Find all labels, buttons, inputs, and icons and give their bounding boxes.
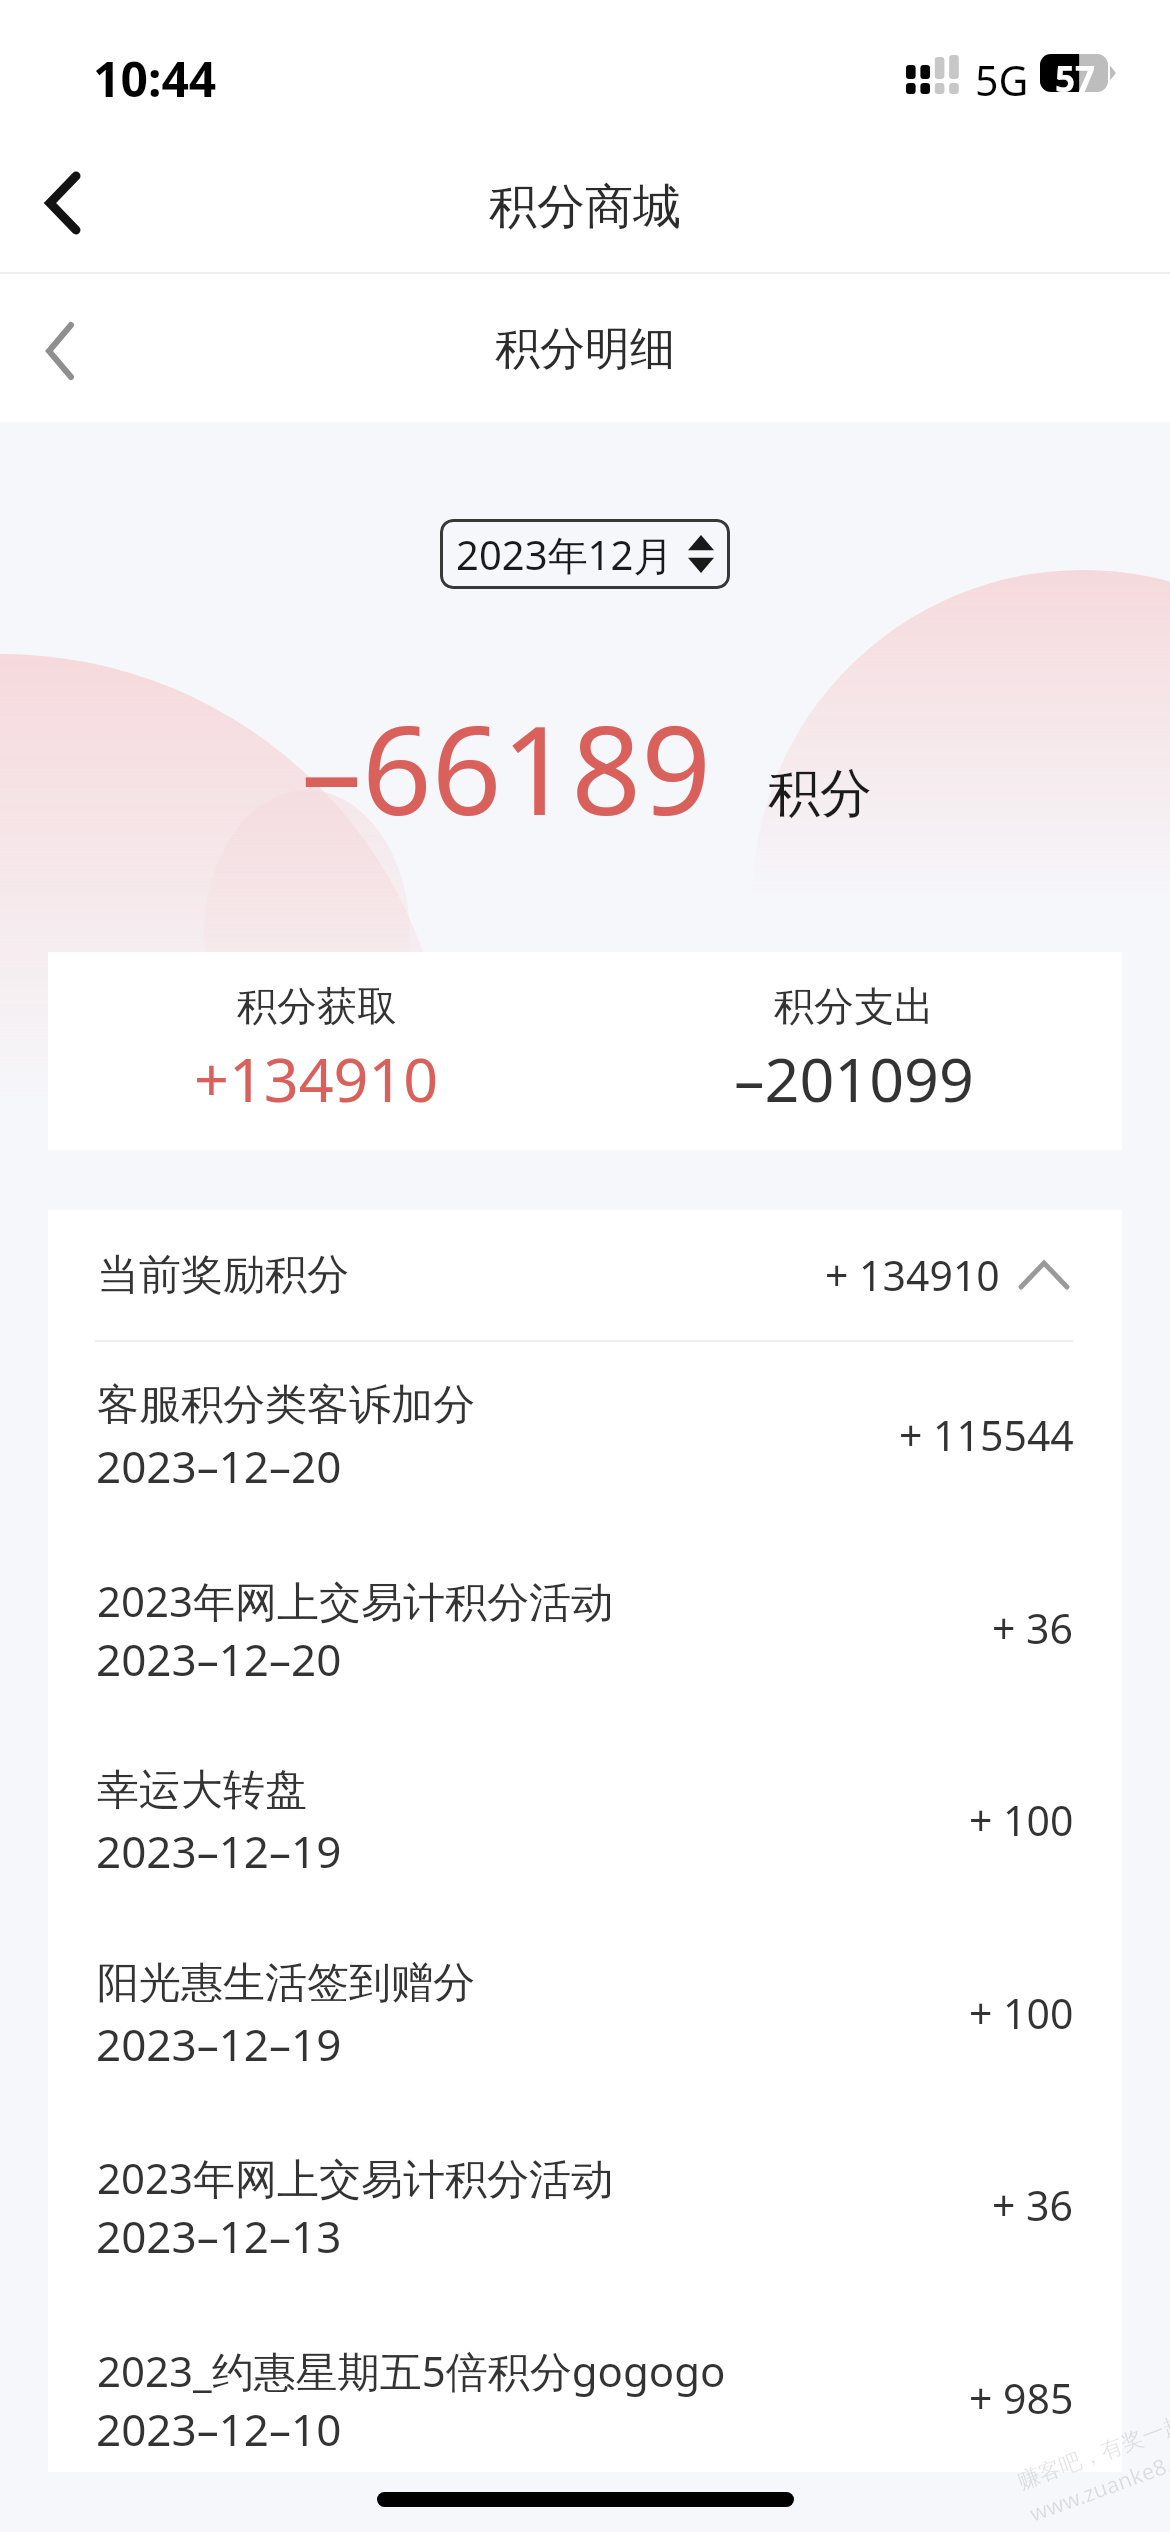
staticText: 客服积分类客诉加分	[97, 1379, 475, 1432]
staticText: 2023–12–10	[96, 2399, 342, 2459]
staticText: 幸运大转盘	[97, 1764, 307, 1817]
staticText: 阳光惠生活签到赠分	[97, 1957, 475, 2010]
staticText: 2023年网上交易计积分活动	[97, 1572, 614, 1629]
staticText: 10:44	[93, 46, 217, 111]
staticText: 积分支出	[774, 981, 934, 1031]
staticText: 赚客吧，有奖一起赚！	[1014, 2394, 1170, 2496]
staticText: + 36	[992, 1600, 1074, 1656]
staticText: 2023–12–19	[96, 1821, 342, 1881]
staticText: +134910	[194, 1037, 439, 1120]
staticText: + 115544	[899, 1407, 1074, 1463]
staticText: 2023–12–20	[96, 1436, 342, 1496]
button[interactable]: 客服积分类客诉加分	[48, 1310, 1122, 1502]
staticText: 积分获取	[237, 981, 397, 1031]
button[interactable]: 阳光惠生活签到赠分	[48, 1888, 1122, 2080]
button[interactable]: Back	[0, 292, 120, 410]
staticText: 2023年网上交易计积分活动	[97, 2149, 614, 2206]
staticText: –201099	[734, 1037, 974, 1120]
staticText: 2023–12–13	[96, 2206, 342, 2266]
staticText: + 100	[969, 1792, 1074, 1848]
button[interactable]: 2023_约惠星期五5倍积分gogogo	[48, 2273, 1122, 2465]
staticText: 5G	[975, 52, 1029, 108]
staticText: 2023年12月	[456, 527, 674, 582]
staticText: 2023_约惠星期五5倍积分gogogo	[97, 2342, 726, 2399]
button[interactable]: 2023年网上交易计积分活动	[48, 1503, 1122, 1695]
button[interactable]: 2023年网上交易计积分活动	[48, 2080, 1122, 2272]
button[interactable]: 当前奖励积分	[48, 1210, 1122, 1340]
button[interactable]: 幸运大转盘	[48, 1695, 1122, 1887]
staticText: 2023–12–20	[96, 1629, 342, 1689]
staticText: 57	[1055, 55, 1096, 95]
staticText: + 985	[969, 2370, 1074, 2426]
staticText: –66189	[301, 685, 711, 851]
staticText: 积分明细	[495, 321, 675, 378]
staticText: + 100	[969, 1985, 1074, 2041]
staticText: 2023–12–19	[96, 2014, 342, 2074]
staticText: + 36	[992, 2177, 1074, 2233]
staticText: 积分商城	[489, 177, 681, 237]
staticText: www.zuanke8.com	[1025, 2433, 1170, 2528]
button[interactable]: Back	[0, 144, 125, 262]
staticText: + 134910	[825, 1247, 1000, 1303]
button[interactable]: 2023年12月	[440, 519, 730, 589]
staticText: 当前奖励积分	[97, 1249, 349, 1302]
staticText: 积分	[768, 761, 872, 827]
